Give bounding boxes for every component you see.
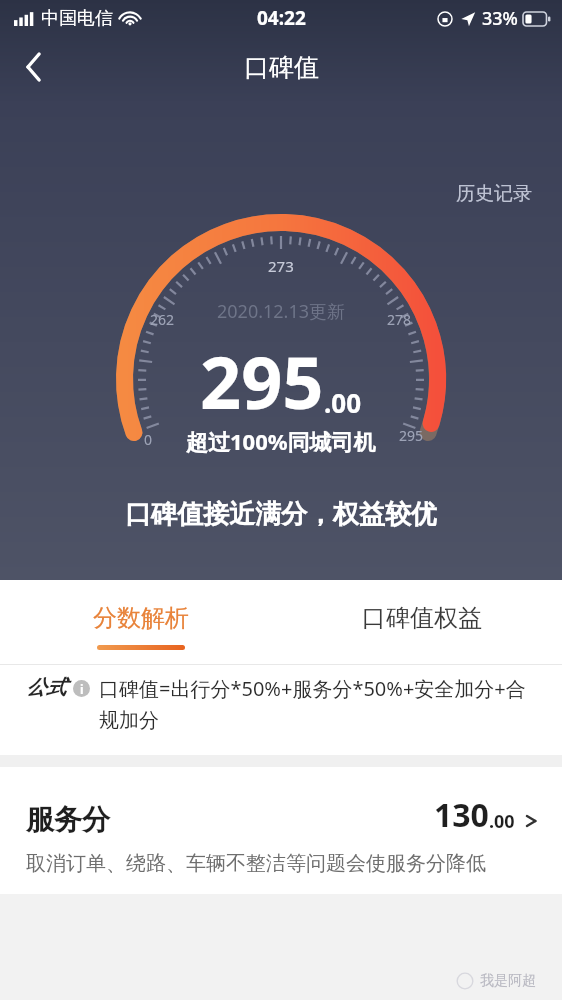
button[interactable]: 返回	[10, 43, 58, 91]
staticText: 取消订单、绕路、车辆不整洁等问题会使服务分降低	[26, 851, 523, 876]
staticText: 0	[144, 430, 153, 449]
staticText: 273	[268, 256, 294, 276]
staticText: 中国电信	[41, 7, 113, 30]
staticText: 262	[150, 310, 175, 329]
staticText: 130	[434, 793, 489, 837]
staticText: 口碑值权益	[362, 603, 482, 633]
staticText: .00	[489, 809, 515, 834]
staticText: 分数解析	[93, 603, 189, 633]
button[interactable]: 口碑值权益	[281, 580, 562, 665]
staticText: 公式	[26, 675, 66, 700]
staticText: 超过100%同城司机	[186, 426, 376, 456]
staticText: 服务分	[26, 802, 110, 837]
staticText: 04:22	[257, 5, 306, 31]
staticText: 口碑值接近满分，权益较优	[125, 498, 437, 531]
staticText: 历史记录	[456, 182, 532, 206]
staticText: i	[80, 681, 84, 697]
staticText: 295	[399, 426, 424, 445]
button[interactable]: 分数解析	[0, 580, 281, 665]
staticText: 我是阿超	[480, 972, 536, 990]
button[interactable]: 服务分	[0, 767, 562, 894]
staticText: 295	[200, 332, 324, 430]
staticText: 口碑值	[244, 52, 319, 83]
staticText: 278	[387, 310, 412, 329]
staticText: 2020.12.13更新	[217, 299, 346, 324]
staticText: 口碑值=出行分*50%+服务分*50%+安全加分+合规加分	[99, 675, 528, 733]
button[interactable]: 历史记录	[452, 178, 536, 210]
button[interactable]: 说明	[73, 680, 90, 697]
staticText: 33%	[482, 6, 518, 31]
staticText: .00	[324, 385, 362, 420]
